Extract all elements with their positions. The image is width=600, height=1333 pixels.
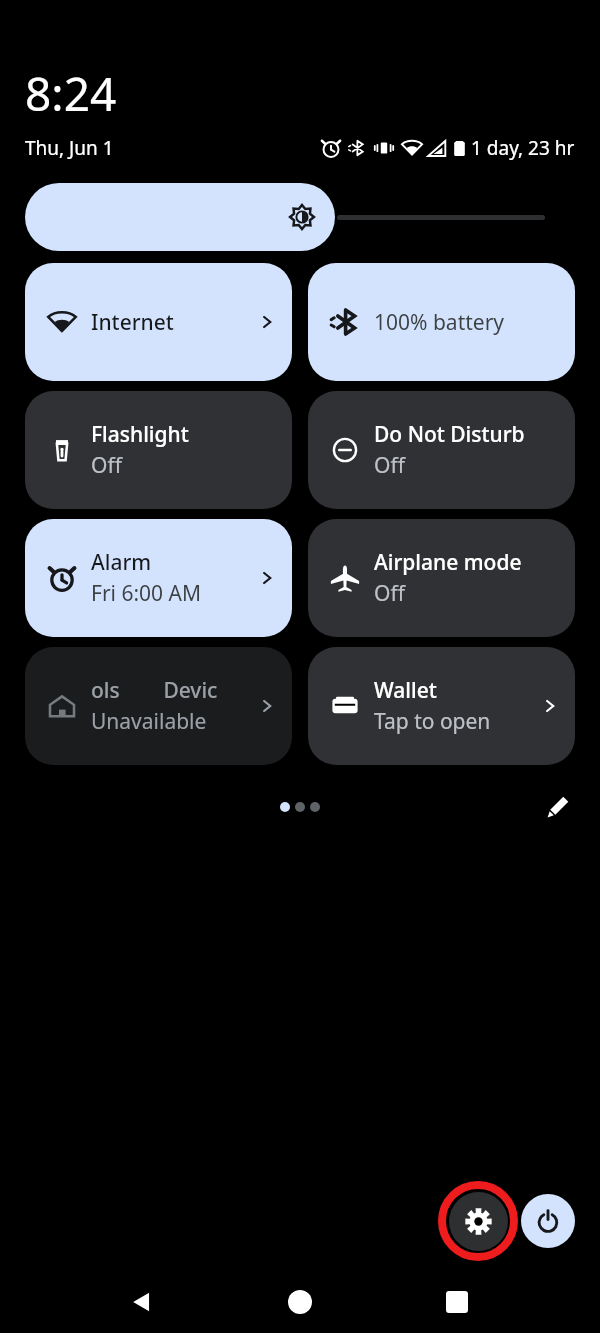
staticText: Flashlight — [91, 420, 189, 449]
staticText: Thu, Jun 1 — [25, 135, 114, 161]
staticText: Unavailable — [91, 707, 207, 736]
button[interactable]: Wallet — [308, 647, 575, 765]
button[interactable]: Brightness — [25, 183, 575, 251]
button[interactable]: Alarm — [25, 519, 292, 637]
staticText: Fri 6:00 AM — [91, 579, 202, 608]
staticText: Airplane mode — [374, 548, 522, 577]
button[interactable]: Do Not Disturb — [308, 391, 575, 509]
staticText: Internet — [91, 308, 174, 337]
button[interactable]: Power — [521, 1194, 575, 1248]
staticText: Alarm — [91, 548, 152, 577]
button[interactable]: Edit tiles — [538, 787, 578, 827]
staticText: Tap to open — [374, 707, 491, 736]
button[interactable]: 100% battery — [308, 263, 575, 381]
button[interactable]: Flashlight — [25, 391, 292, 509]
staticText: Off — [91, 451, 122, 480]
staticText: 100% battery — [374, 308, 505, 337]
staticText: 1 day, 23 hr — [471, 135, 575, 161]
button[interactable]: Internet — [25, 263, 292, 381]
button[interactable]: Recent apps — [433, 1278, 481, 1326]
button[interactable]: Home — [276, 1278, 324, 1326]
staticText: Off — [374, 451, 405, 480]
button[interactable]: Settings — [438, 1181, 518, 1261]
button[interactable]: ols Devic — [25, 647, 292, 765]
button[interactable]: Back — [118, 1278, 166, 1326]
staticText: Off — [374, 579, 405, 608]
staticText: 8:24 — [25, 62, 117, 125]
button[interactable]: Airplane mode — [308, 519, 575, 637]
staticText: ols Devic — [91, 676, 218, 705]
staticText: Do Not Disturb — [374, 420, 525, 449]
staticText: Wallet — [374, 676, 437, 705]
